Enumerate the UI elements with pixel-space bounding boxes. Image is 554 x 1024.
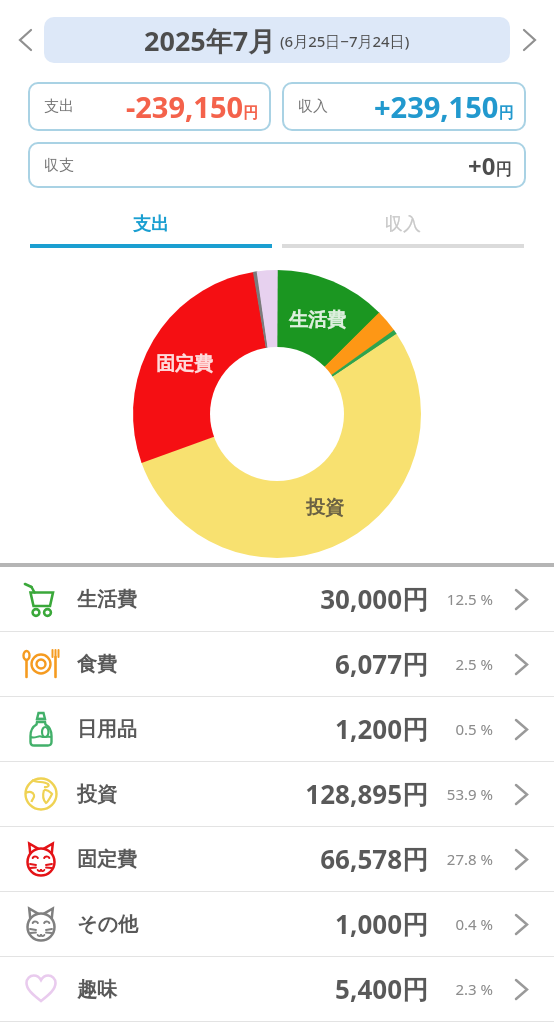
staticText: 食費 (77, 652, 117, 677)
button[interactable]: 食費 (0, 632, 554, 696)
staticText: 128,895円 (117, 776, 428, 812)
staticText: 30,000円 (137, 581, 428, 617)
staticText: 12.5 % (428, 589, 493, 609)
button[interactable] (510, 21, 548, 59)
staticText: (6月25日−7月24日) (276, 31, 410, 51)
staticText: 2.5 % (428, 654, 493, 674)
button[interactable]: 投資 (0, 762, 554, 826)
staticText: 5,400円 (117, 971, 428, 1007)
staticText: 収支 (44, 156, 74, 175)
button[interactable]: 固定費 (0, 827, 554, 891)
staticText: 日用品 (77, 717, 137, 742)
staticText: 66,578円 (137, 841, 428, 877)
staticText: 1,200円 (137, 711, 428, 747)
staticText: 固定費 (156, 352, 213, 376)
button[interactable]: 趣味 (0, 957, 554, 1021)
staticText: 2025年7月 (144, 22, 276, 59)
staticText: 27.8 % (428, 849, 493, 869)
button[interactable]: 日用品 (0, 697, 554, 761)
staticText: 0.5 % (428, 719, 493, 739)
staticText: 投資 (306, 496, 344, 520)
staticText: 支出 (133, 213, 169, 236)
staticText: 0.4 % (428, 914, 493, 934)
button[interactable] (6, 21, 44, 59)
staticText: 投資 (77, 782, 117, 807)
button[interactable]: 支出 (30, 213, 272, 248)
staticText: 収入 (298, 97, 328, 116)
staticText: 53.9 % (428, 784, 493, 804)
button[interactable]: 支出 (28, 82, 271, 131)
staticText: 2.3 % (428, 979, 493, 999)
button[interactable]: 収支 (28, 142, 526, 188)
staticText: 6,077円 (117, 646, 428, 682)
button[interactable]: 生活費 (0, 567, 554, 631)
staticText: 1,000円 (138, 906, 428, 942)
staticText: +0円 (468, 149, 512, 182)
staticText: その他 (77, 912, 138, 937)
staticText: 生活費 (77, 587, 137, 612)
button[interactable]: その他 (0, 892, 554, 956)
staticText: 支出 (44, 97, 74, 116)
staticText: 趣味 (77, 977, 117, 1002)
staticText: +239,150円 (374, 87, 514, 126)
staticText: 収入 (385, 213, 421, 236)
staticText: 生活費 (289, 308, 346, 332)
button[interactable]: 収入 (282, 82, 526, 131)
button[interactable]: 収入 (282, 213, 524, 248)
staticText: 固定費 (77, 847, 137, 872)
staticText: -239,150円 (126, 87, 259, 126)
button[interactable]: 2025年7月 (44, 17, 510, 63)
